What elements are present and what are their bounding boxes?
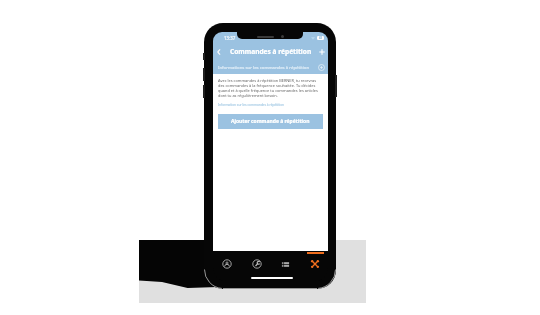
button[interactable]: Berner [308,257,322,271]
button[interactable]: Compte [220,257,234,271]
staticText: Ajouter commande à répétition [231,118,310,125]
staticText: Informations sur les commandes à répétit… [218,64,310,70]
button[interactable]: Ajouter [316,46,328,58]
button[interactable]: Retour [213,46,225,58]
button[interactable]: Outils [250,257,264,271]
staticText: 43 [319,36,322,40]
staticText: 13:37 [224,35,236,41]
button[interactable]: Information sur les commandes à répétiti… [218,103,285,107]
staticText: Commandes à répétition [230,47,312,56]
staticText: Avec les commandes à répétition BERNER, … [218,78,323,98]
button[interactable]: Ajouter commande à répétition [218,114,323,129]
button[interactable]: Informations sur les commandes à répétit… [213,60,328,74]
button[interactable]: Catalogue [278,257,292,271]
